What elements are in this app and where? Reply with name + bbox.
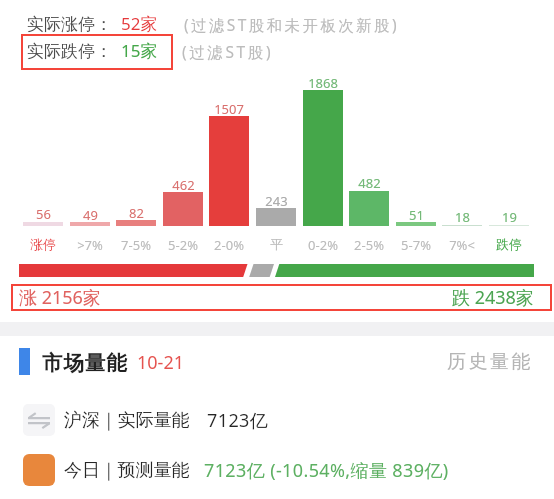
staticText: 平	[270, 236, 283, 252]
button[interactable]: 历史量能	[431, 347, 533, 377]
staticText: (过滤ST股)	[182, 41, 274, 62]
staticText: 7-5%	[121, 236, 151, 254]
staticText: 市场量能	[42, 350, 128, 376]
button[interactable]: 今日｜预测量能	[23, 448, 554, 492]
staticText: 482	[358, 174, 381, 192]
staticText: 5-7%	[401, 236, 431, 254]
other: 切换指数	[23, 404, 55, 436]
staticText: 历史量能	[447, 350, 533, 374]
staticText: 5-2%	[168, 236, 198, 254]
staticText: 0-2%	[308, 236, 338, 254]
staticText: 1507	[214, 100, 244, 118]
staticText: 7%<	[449, 236, 475, 254]
staticText: 沪深｜实际量能	[64, 409, 190, 432]
staticText: 7123亿	[207, 408, 269, 433]
staticText: 82	[129, 204, 144, 222]
staticText: 462	[172, 176, 195, 194]
button[interactable]: 涨 2156家	[11, 284, 552, 311]
staticText: (过滤ST股和未开板次新股)	[184, 14, 400, 35]
button[interactable]: 切换指数	[23, 398, 554, 442]
staticText: 今日｜预测量能	[64, 459, 190, 482]
staticText: 2-5%	[354, 236, 384, 254]
staticText: 2-0%	[214, 236, 244, 254]
staticText: 51	[409, 206, 424, 224]
staticText: 56	[36, 205, 51, 223]
staticText: >7%	[77, 236, 103, 254]
staticText: 10-21	[137, 350, 184, 375]
staticText: 7123亿 (-10.54%,缩量 839亿)	[204, 458, 449, 483]
staticText: 实际跌停：	[27, 41, 112, 62]
staticText: 243	[265, 192, 288, 210]
staticText: 52家	[121, 12, 158, 35]
staticText: 涨 2156家	[19, 285, 101, 310]
staticText: 15家	[121, 39, 158, 62]
staticText: 18	[455, 208, 470, 226]
staticText: 涨停	[30, 236, 56, 252]
staticText: 跌 2438家	[452, 285, 534, 310]
staticText: 1868	[308, 74, 338, 92]
staticText: 跌停	[496, 236, 522, 252]
staticText: 49	[83, 206, 98, 224]
staticText: 实际涨停：	[27, 14, 112, 35]
staticText: 19	[502, 208, 517, 226]
